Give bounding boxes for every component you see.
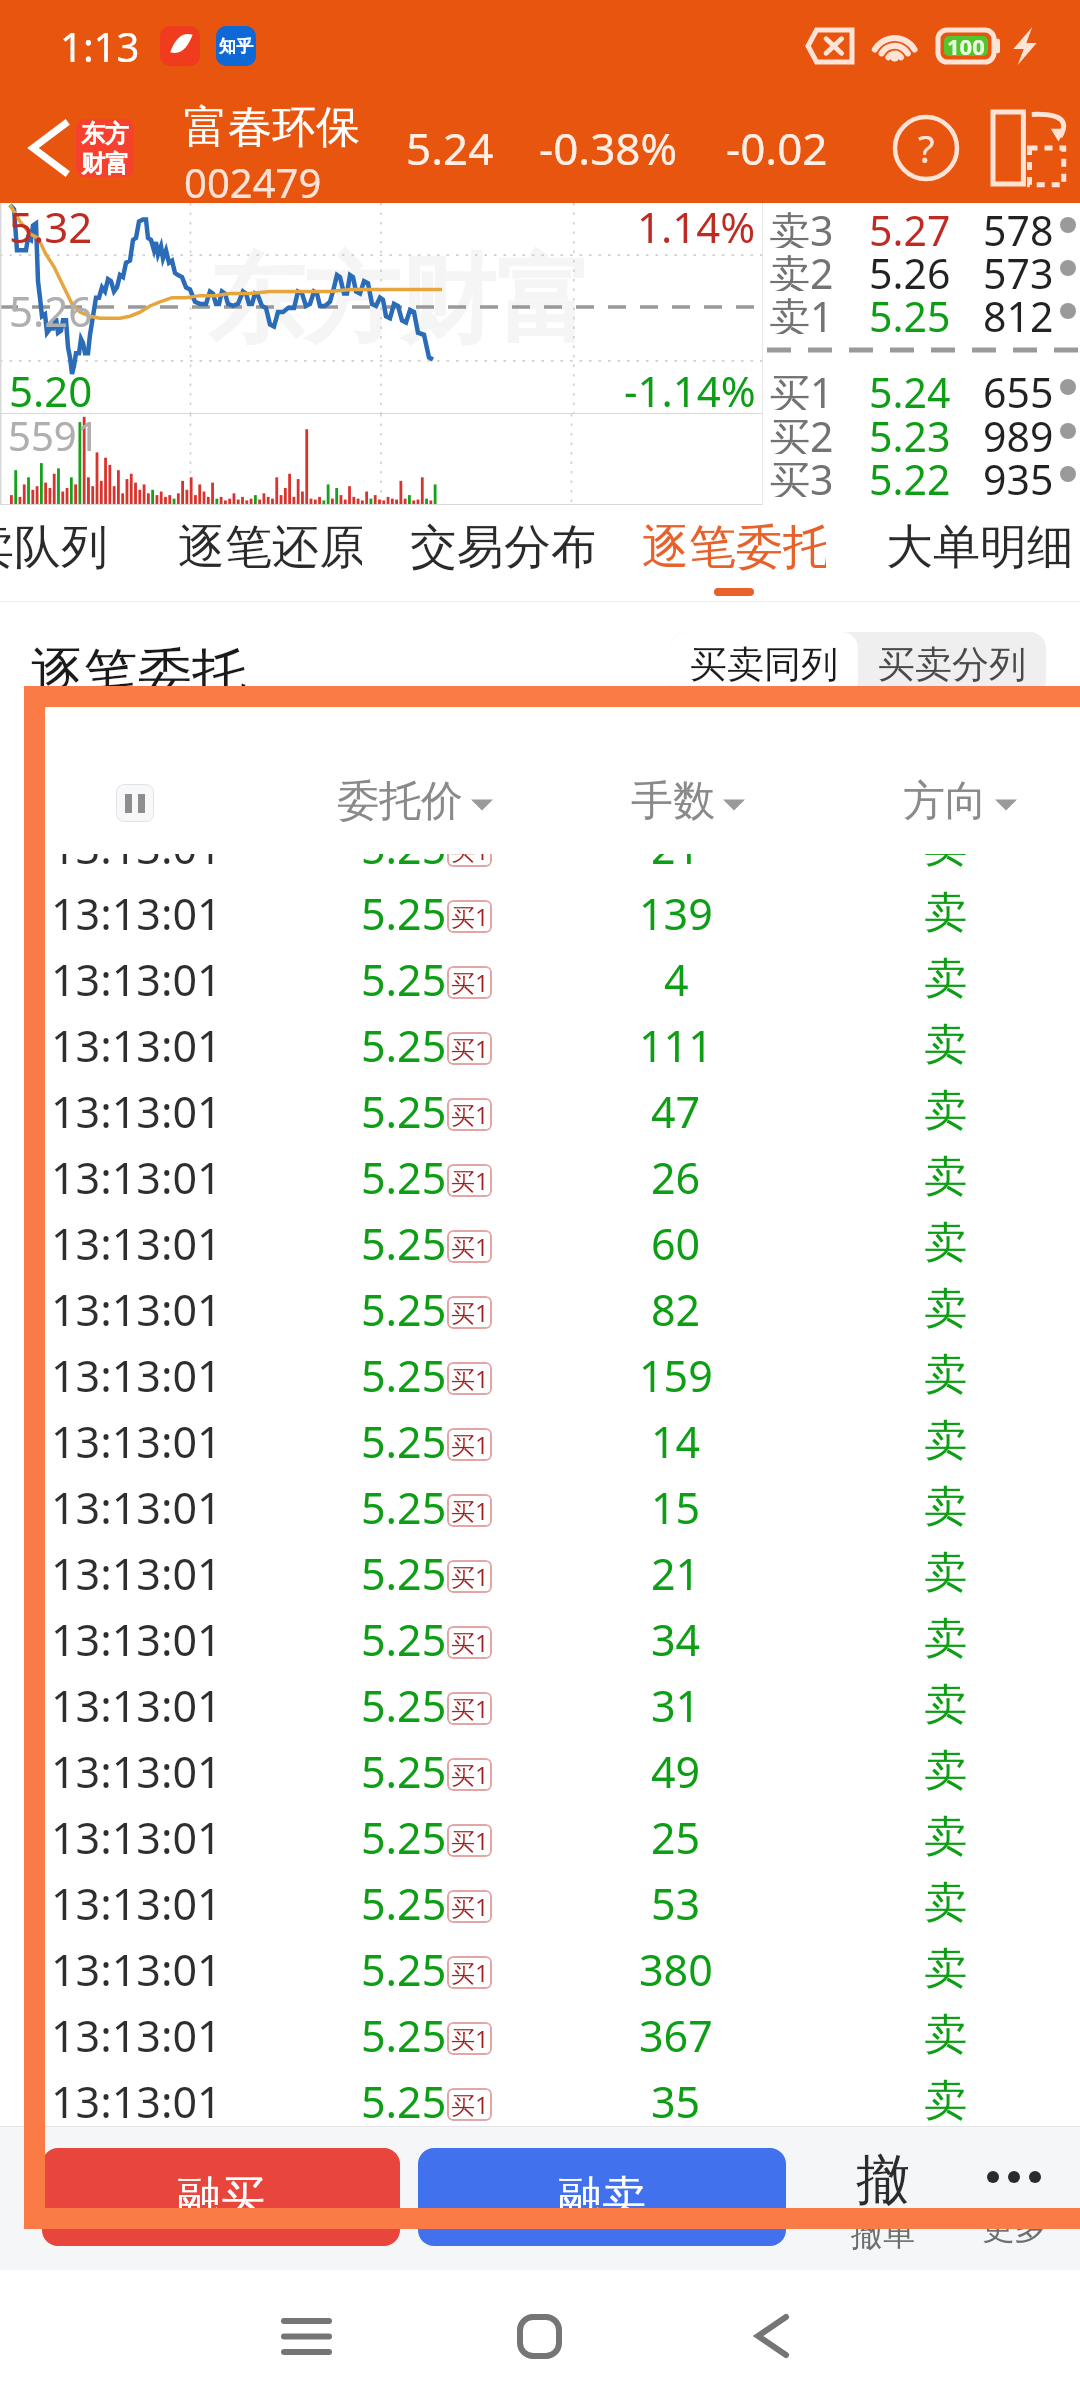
button[interactable]: 买卖分列 (858, 632, 1046, 696)
button[interactable]: 买1 (763, 364, 1080, 410)
button[interactable]: 13:13:01 (0, 1870, 1080, 1936)
staticText: 买1 (451, 1296, 489, 1329)
staticText: 159 (639, 1346, 713, 1405)
button[interactable]: 13:13:01 (0, 1474, 1080, 1540)
staticText: 5591 (8, 408, 100, 462)
staticText: 买1 (451, 966, 489, 999)
button[interactable]: Pause (116, 784, 154, 822)
staticText: 15 (651, 1478, 701, 1537)
staticText: -1.14% (624, 362, 756, 419)
button[interactable]: 卖2 (763, 245, 1080, 291)
staticText: 35 (651, 2072, 701, 2126)
button[interactable]: 手数 (568, 766, 808, 836)
staticText: 卖 (924, 886, 967, 940)
button[interactable]: Home (479, 2270, 599, 2400)
button[interactable]: 13:13:01 (0, 1540, 1080, 1606)
staticText: 13:13:01 (51, 1412, 222, 1471)
staticText: 578 (983, 202, 1054, 248)
button[interactable]: 13:13:01 (0, 946, 1080, 1012)
staticText: 卖 (924, 1282, 967, 1336)
button[interactable]: 卖3 (763, 202, 1080, 248)
staticText: -0.38% (539, 118, 678, 178)
staticText: 买1 (451, 1560, 489, 1593)
staticText: 31 (651, 1676, 701, 1735)
staticText: 卖 (924, 2074, 967, 2126)
staticText: 撤单 (851, 2214, 915, 2254)
button[interactable]: 买2 (763, 408, 1080, 454)
staticText: 100 (947, 31, 985, 61)
button[interactable]: 13:13:01 (0, 814, 1080, 880)
button[interactable]: 逐笔还原 (178, 505, 362, 602)
button[interactable]: 撤 (828, 2146, 938, 2254)
staticText: 935 (983, 451, 1054, 497)
staticText: 13:13:01 (51, 1610, 222, 1669)
staticText: 5.20 (9, 362, 93, 419)
button[interactable]: Recents (246, 2270, 366, 2400)
button[interactable]: Rotate screen (976, 92, 1080, 203)
button[interactable]: 13:13:01 (0, 1738, 1080, 1804)
button[interactable]: 13:13:01 (0, 1936, 1080, 2002)
button[interactable]: 13:13:01 (0, 1606, 1080, 1672)
button[interactable]: Back (8, 92, 88, 203)
button[interactable]: 13:13:01 (0, 1078, 1080, 1144)
staticText: 买1 (451, 1692, 489, 1725)
staticText: 5.25 (361, 818, 447, 877)
staticText: 卖 (924, 952, 967, 1006)
staticText: 融买 (177, 2170, 265, 2225)
button[interactable]: 13:13:01 (0, 1672, 1080, 1738)
button[interactable]: 买卖同列 (670, 632, 858, 696)
button[interactable]: 13:13:01 (0, 2002, 1080, 2068)
staticText: 13:13:01 (51, 1148, 222, 1207)
button[interactable]: 融卖 (418, 2148, 786, 2246)
staticText: 卖 (924, 1150, 967, 1204)
staticText: 5.22 (869, 451, 951, 497)
button[interactable]: Help (876, 92, 976, 203)
button[interactable]: 13:13:01 (0, 1342, 1080, 1408)
button[interactable]: 13:13:01 (0, 2068, 1080, 2126)
staticText: 13:13:01 (51, 818, 222, 877)
button[interactable]: 逐笔委托 (642, 505, 826, 602)
staticText: 5.25 (361, 1214, 447, 1273)
staticText: 5.25 (361, 1610, 447, 1669)
staticText: 13:13:01 (51, 1346, 222, 1405)
staticText: 卖 (924, 1810, 967, 1864)
staticText: 买1 (451, 1494, 489, 1527)
staticText: 东方 (81, 119, 129, 149)
button[interactable]: 方向 (840, 766, 1080, 836)
staticText: 5.25 (361, 1478, 447, 1537)
button[interactable]: 13:13:01 (0, 1804, 1080, 1870)
staticText: 25 (651, 1808, 701, 1867)
staticText: 47 (651, 1082, 701, 1141)
staticText: 5.25 (361, 1676, 447, 1735)
button[interactable]: Back (712, 2270, 832, 2400)
staticText: 13:13:01 (51, 950, 222, 1009)
button[interactable]: 13:13:01 (0, 1210, 1080, 1276)
staticText: 655 (983, 364, 1054, 410)
button[interactable]: 13:13:01 (0, 1012, 1080, 1078)
staticText: 东方财富 (208, 241, 592, 362)
button[interactable]: 13:13:01 (0, 1276, 1080, 1342)
staticText: 方向 (903, 775, 987, 828)
staticText: 5.25 (869, 288, 951, 334)
staticText: 卖队列 (0, 518, 108, 577)
staticText: 卖 (924, 1348, 967, 1402)
staticText: 买卖分列 (878, 641, 1026, 688)
staticText: 卖 (924, 1216, 967, 1270)
button[interactable]: 委托价 (280, 766, 550, 836)
button[interactable]: 13:13:01 (0, 1408, 1080, 1474)
staticText: 5.25 (361, 1808, 447, 1867)
button[interactable]: 卖1 (763, 288, 1080, 334)
button[interactable]: 交易分布 (410, 505, 594, 602)
staticText: 买1 (451, 1230, 489, 1263)
button[interactable]: 融买 (42, 2148, 400, 2246)
staticText: 买1 (451, 1164, 489, 1197)
staticText: 撤 (856, 2146, 910, 2214)
button[interactable]: 买3 (763, 451, 1080, 497)
button[interactable]: 大单明细 (886, 505, 1070, 602)
staticText: 买1 (451, 1362, 489, 1395)
button[interactable]: 13:13:01 (0, 1144, 1080, 1210)
button[interactable]: 更多 (959, 2146, 1069, 2248)
button[interactable]: 13:13:01 (0, 880, 1080, 946)
button[interactable]: 卖队列 (0, 505, 129, 602)
staticText: 5.25 (361, 1874, 447, 1933)
